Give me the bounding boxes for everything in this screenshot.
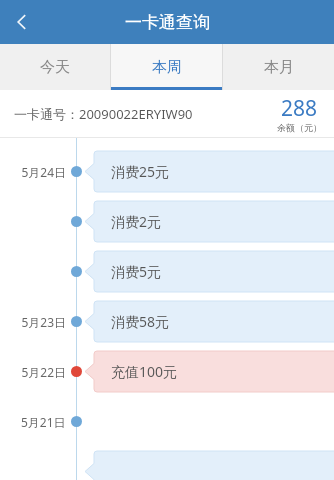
- staticText: 消费58元: [111, 312, 170, 331]
- staticText: 5月22日: [21, 364, 66, 380]
- button[interactable]: 今天: [0, 44, 110, 90]
- button[interactable]: 消费58元: [85, 301, 334, 342]
- staticText: 5月23日: [21, 314, 66, 330]
- staticText: 消费5元: [111, 262, 162, 281]
- button[interactable]: Back: [0, 0, 44, 44]
- staticText: 一卡通号：: [14, 106, 79, 122]
- staticText: 本周: [152, 58, 182, 77]
- button[interactable]: 消费5元: [85, 251, 334, 292]
- staticText: 消费2元: [111, 212, 162, 231]
- button[interactable]: 消费2元: [85, 201, 334, 242]
- staticText: 5月24日: [21, 164, 66, 180]
- button[interactable]: 充值100元: [85, 351, 334, 392]
- button[interactable]: 一卡通号：: [0, 90, 334, 137]
- staticText: 余额（元）: [277, 122, 322, 133]
- staticText: 本月: [264, 58, 294, 77]
- staticText: 20090022ERYIW90: [79, 105, 193, 123]
- staticText: 288: [281, 94, 318, 123]
- staticText: 5月21日: [21, 414, 66, 430]
- staticText: 一卡通查询: [125, 12, 210, 33]
- staticText: 今天: [40, 58, 70, 77]
- button[interactable]: 消费25元: [85, 151, 334, 192]
- button[interactable]: 本月: [223, 44, 334, 90]
- button[interactable]: [85, 451, 334, 480]
- staticText: 消费25元: [111, 162, 170, 181]
- staticText: 充值100元: [111, 362, 178, 381]
- button[interactable]: 本周: [111, 44, 222, 90]
